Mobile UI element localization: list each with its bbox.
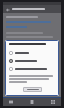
button[interactable]: Option xyxy=(9,65,55,72)
other: Option xyxy=(9,67,13,71)
other: Selected option xyxy=(9,59,13,63)
button[interactable]: Documents xyxy=(28,98,36,106)
button[interactable]: Selected option xyxy=(9,57,55,64)
button[interactable]: Back xyxy=(5,7,10,12)
button[interactable]: Home xyxy=(7,98,15,106)
other: Option xyxy=(9,51,13,55)
button[interactable]: Apps xyxy=(49,98,57,106)
button[interactable]: Option xyxy=(9,49,55,56)
button[interactable] xyxy=(23,87,42,92)
